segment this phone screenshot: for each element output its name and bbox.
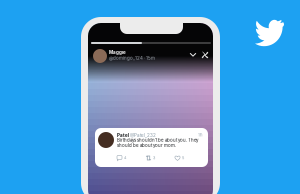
button[interactable]: Close fleet (201, 51, 209, 59)
button[interactable]: 5 (174, 154, 196, 162)
button[interactable]: More options (189, 51, 197, 59)
button[interactable]: 4 (116, 154, 138, 162)
staticText: 3 (153, 156, 155, 160)
button[interactable]: Twitter (255, 19, 285, 45)
staticText: Maggie (109, 49, 126, 55)
staticText: Birthdays shouldn't be about you. They s… (117, 137, 198, 148)
button[interactable]: Patel (95, 128, 208, 167)
button[interactable]: 3 (145, 154, 167, 162)
staticText: @domingo_124 · 15m (109, 56, 155, 61)
staticText: @Patel_232 (129, 132, 156, 138)
staticText: Patel (117, 132, 129, 138)
staticText: 5 (182, 156, 184, 160)
staticText: 1h (198, 132, 202, 137)
staticText: 4 (124, 156, 126, 160)
